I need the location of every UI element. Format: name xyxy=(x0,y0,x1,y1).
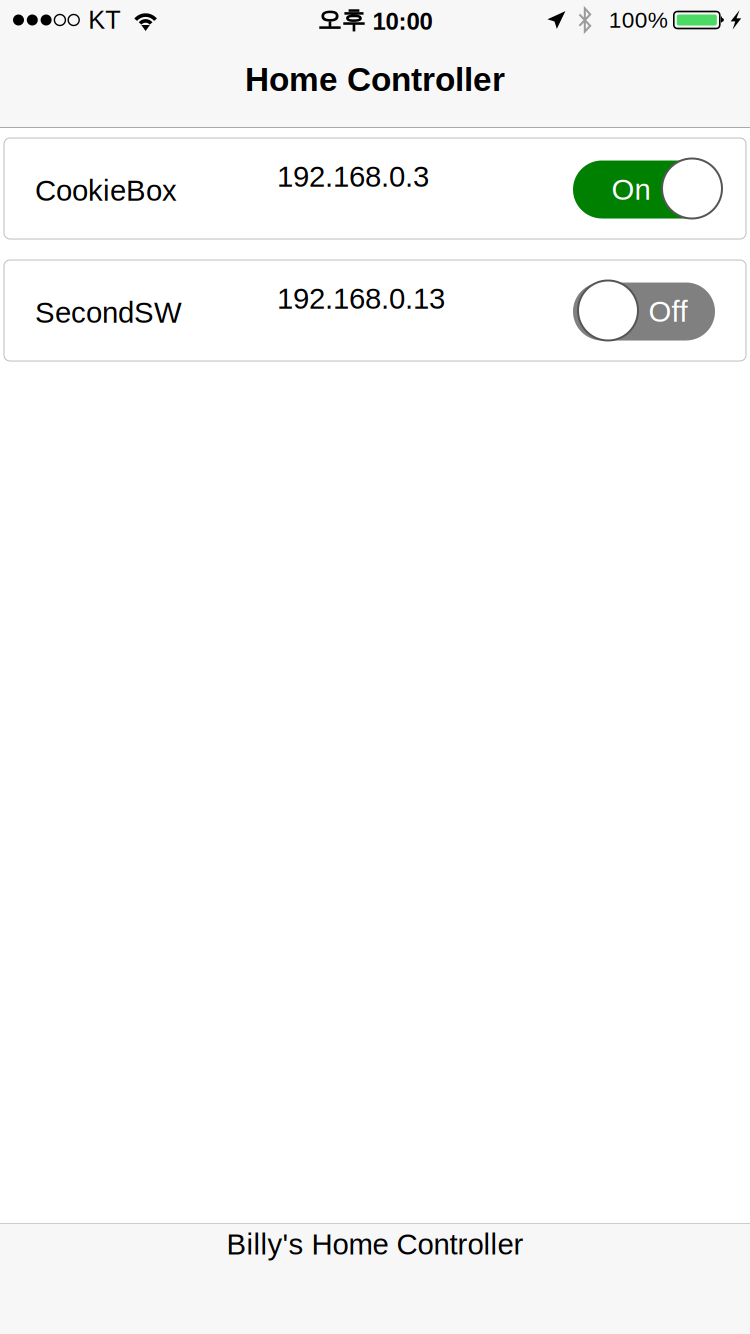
staticText: CookieBox xyxy=(35,174,177,207)
staticText: 192.168.0.13 xyxy=(277,282,445,315)
button[interactable]: SecondSW switch, off xyxy=(573,280,723,340)
staticText: 192.168.0.3 xyxy=(277,160,429,193)
button[interactable]: CookieBox xyxy=(4,138,746,239)
staticText: On xyxy=(611,173,650,206)
button[interactable]: CookieBox switch, on xyxy=(573,158,723,218)
staticText: KT xyxy=(88,6,120,34)
staticText: Off xyxy=(648,295,687,328)
staticText: Home Controller xyxy=(245,61,505,98)
staticText: 100% xyxy=(609,7,668,33)
button[interactable]: SecondSW xyxy=(4,260,746,361)
staticText: 오후 10:00 xyxy=(317,5,432,35)
staticText: Billy's Home Controller xyxy=(226,1228,523,1261)
staticText: SecondSW xyxy=(35,296,182,329)
